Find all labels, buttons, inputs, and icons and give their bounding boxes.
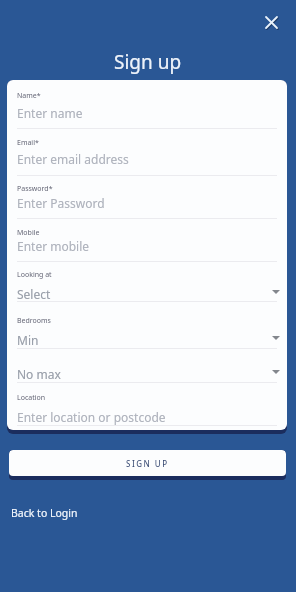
staticText: Enter Password — [17, 195, 105, 211]
staticText: Location — [17, 393, 46, 403]
staticText: Bedrooms — [17, 316, 51, 326]
staticText: Mobile — [17, 228, 40, 238]
button[interactable] — [7, 135, 287, 176]
staticText: Email* — [17, 138, 39, 148]
button[interactable]: Min — [7, 330, 287, 346]
staticText: Password* — [17, 184, 53, 194]
staticText: Back to Login — [11, 506, 78, 520]
staticText: Select — [17, 286, 51, 302]
staticText: Name* — [17, 91, 41, 101]
button[interactable]: Back to Login — [11, 506, 78, 520]
button[interactable] — [7, 390, 287, 426]
staticText: Enter email address — [17, 151, 129, 167]
staticText: Min — [17, 332, 39, 348]
button[interactable] — [7, 225, 287, 262]
button[interactable]: Select — [7, 284, 287, 300]
staticText: Enter mobile — [17, 238, 90, 254]
button[interactable] — [259, 10, 283, 34]
staticText: Enter name — [17, 105, 83, 121]
staticText: No max — [17, 366, 61, 382]
button[interactable] — [7, 88, 287, 129]
staticText: Sign up — [114, 49, 182, 75]
button[interactable] — [7, 181, 287, 219]
button[interactable]: No max — [7, 364, 287, 380]
button[interactable]: SIGN UP — [9, 450, 286, 480]
staticText: SIGN UP — [126, 458, 169, 469]
staticText: Enter location or postcode — [17, 409, 166, 425]
staticText: Looking at — [17, 270, 52, 280]
